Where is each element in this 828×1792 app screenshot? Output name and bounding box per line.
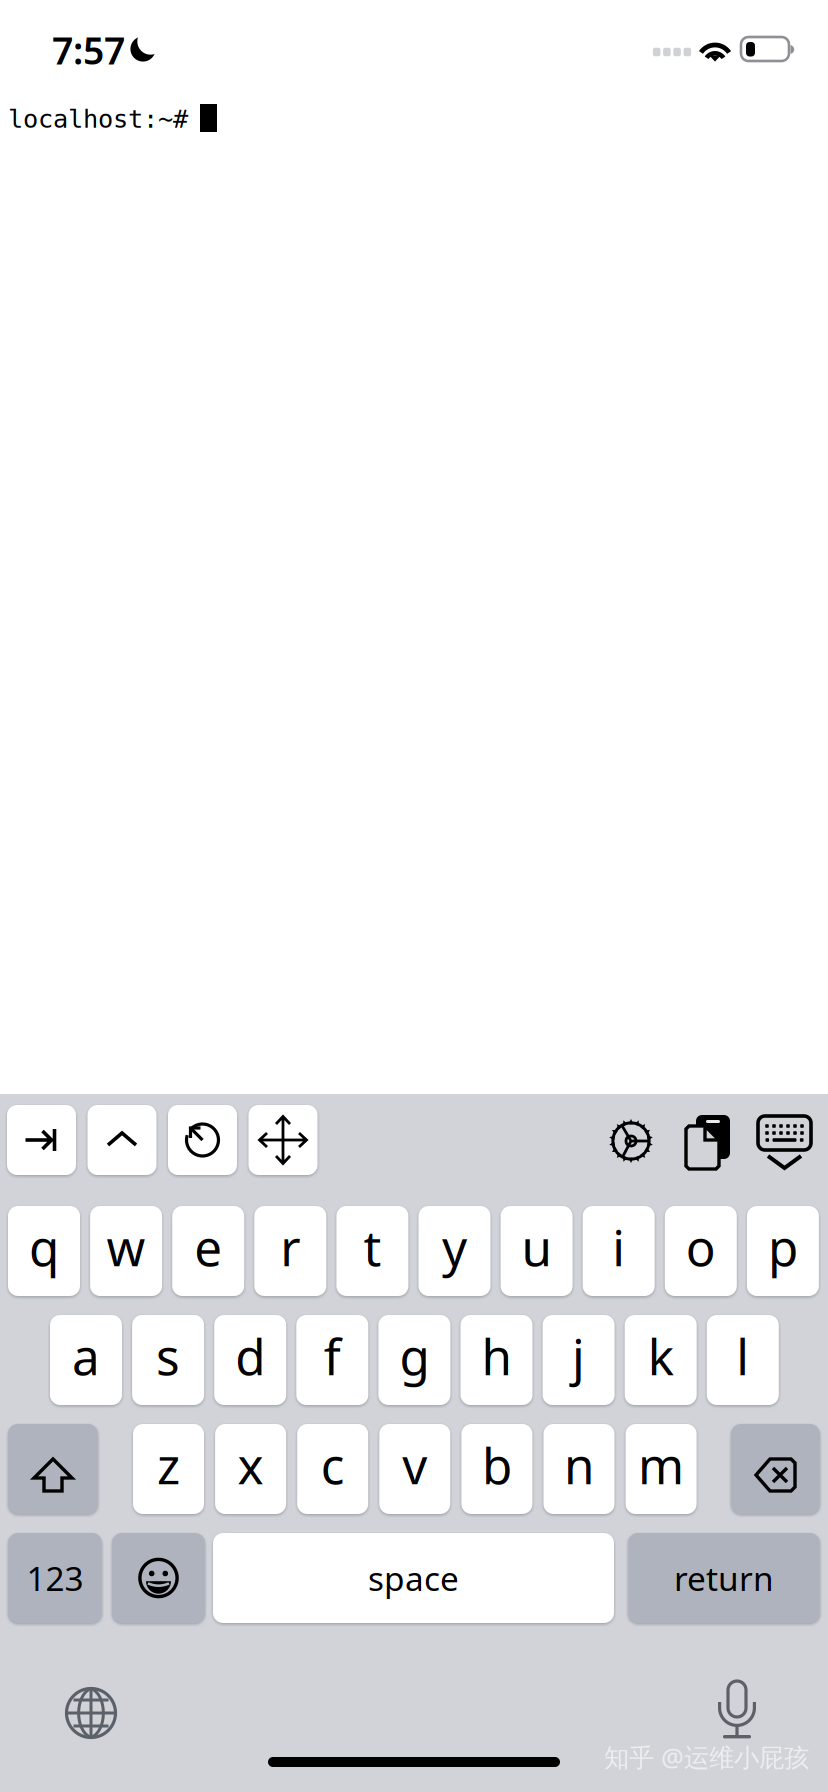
button[interactable]: y — [418, 1206, 490, 1296]
staticText: o — [686, 1214, 716, 1280]
button[interactable]: i — [583, 1206, 655, 1296]
button[interactable]: o — [665, 1206, 737, 1296]
button[interactable]: v — [379, 1424, 450, 1514]
button[interactable]: a — [50, 1315, 122, 1405]
button[interactable]: p — [747, 1206, 819, 1296]
staticText: e — [194, 1214, 222, 1280]
button[interactable]: c — [297, 1424, 368, 1514]
button[interactable]: g — [378, 1315, 450, 1405]
button[interactable]: h — [460, 1315, 532, 1405]
button[interactable]: t — [336, 1206, 408, 1296]
button[interactable]: Arrow keys — [248, 1105, 317, 1175]
button[interactable]: u — [501, 1206, 573, 1296]
staticText: w — [107, 1214, 146, 1280]
staticText: j — [572, 1323, 585, 1389]
staticText: space — [368, 1556, 459, 1600]
button[interactable]: m — [626, 1424, 697, 1514]
staticText: i — [612, 1214, 625, 1280]
staticText: r — [280, 1214, 300, 1280]
button[interactable]: f — [296, 1315, 368, 1405]
staticText: q — [29, 1214, 59, 1280]
button[interactable]: Tab — [7, 1105, 76, 1175]
staticText: b — [482, 1432, 512, 1498]
staticText: z — [157, 1432, 180, 1498]
button[interactable]: space — [213, 1533, 614, 1623]
button[interactable]: d — [214, 1315, 286, 1405]
staticText: k — [648, 1323, 674, 1389]
staticText: v — [402, 1432, 427, 1498]
button[interactable]: Paste — [684, 1111, 736, 1171]
button[interactable]: return — [628, 1533, 820, 1623]
button[interactable]: j — [543, 1315, 615, 1405]
button[interactable]: Settings — [608, 1118, 654, 1164]
staticText: h — [481, 1323, 511, 1389]
staticText: f — [324, 1323, 341, 1389]
button[interactable]: l — [707, 1315, 779, 1405]
staticText: y — [442, 1214, 467, 1280]
staticText: 7:57 — [52, 25, 125, 75]
button[interactable]: Hide keyboard — [756, 1112, 814, 1170]
staticText: localhost:~# — [8, 105, 188, 133]
button[interactable]: Next keyboard — [64, 1686, 118, 1740]
button[interactable]: n — [543, 1424, 614, 1514]
staticText: m — [638, 1432, 684, 1498]
button[interactable]: z — [133, 1424, 204, 1514]
staticText: 123 — [26, 1556, 83, 1600]
staticText: a — [72, 1323, 100, 1389]
staticText: x — [238, 1432, 264, 1498]
button[interactable]: b — [461, 1424, 532, 1514]
button[interactable]: r — [254, 1206, 326, 1296]
button[interactable]: s — [132, 1315, 204, 1405]
staticText: d — [235, 1323, 265, 1389]
button[interactable]: x — [215, 1424, 286, 1514]
button[interactable] — [731, 1424, 820, 1514]
button[interactable]: Control — [87, 1105, 156, 1175]
button[interactable] — [112, 1533, 205, 1623]
staticText: 知乎 @运维小屁孩 — [604, 1740, 809, 1774]
button[interactable]: Dictation — [718, 1681, 756, 1739]
staticText: l — [736, 1323, 749, 1389]
button[interactable]: w — [90, 1206, 162, 1296]
staticText: p — [768, 1214, 798, 1280]
staticText: t — [363, 1214, 381, 1280]
staticText: u — [522, 1214, 552, 1280]
button[interactable]: k — [625, 1315, 697, 1405]
button[interactable]: q — [8, 1206, 80, 1296]
staticText: n — [564, 1432, 594, 1498]
staticText: c — [321, 1432, 345, 1498]
button[interactable]: 123 — [8, 1533, 102, 1623]
button[interactable]: History — [168, 1105, 237, 1175]
staticText: return — [674, 1556, 774, 1600]
staticText: s — [156, 1323, 180, 1389]
button[interactable]: e — [172, 1206, 244, 1296]
staticText: g — [399, 1323, 429, 1389]
button[interactable] — [8, 1424, 98, 1514]
